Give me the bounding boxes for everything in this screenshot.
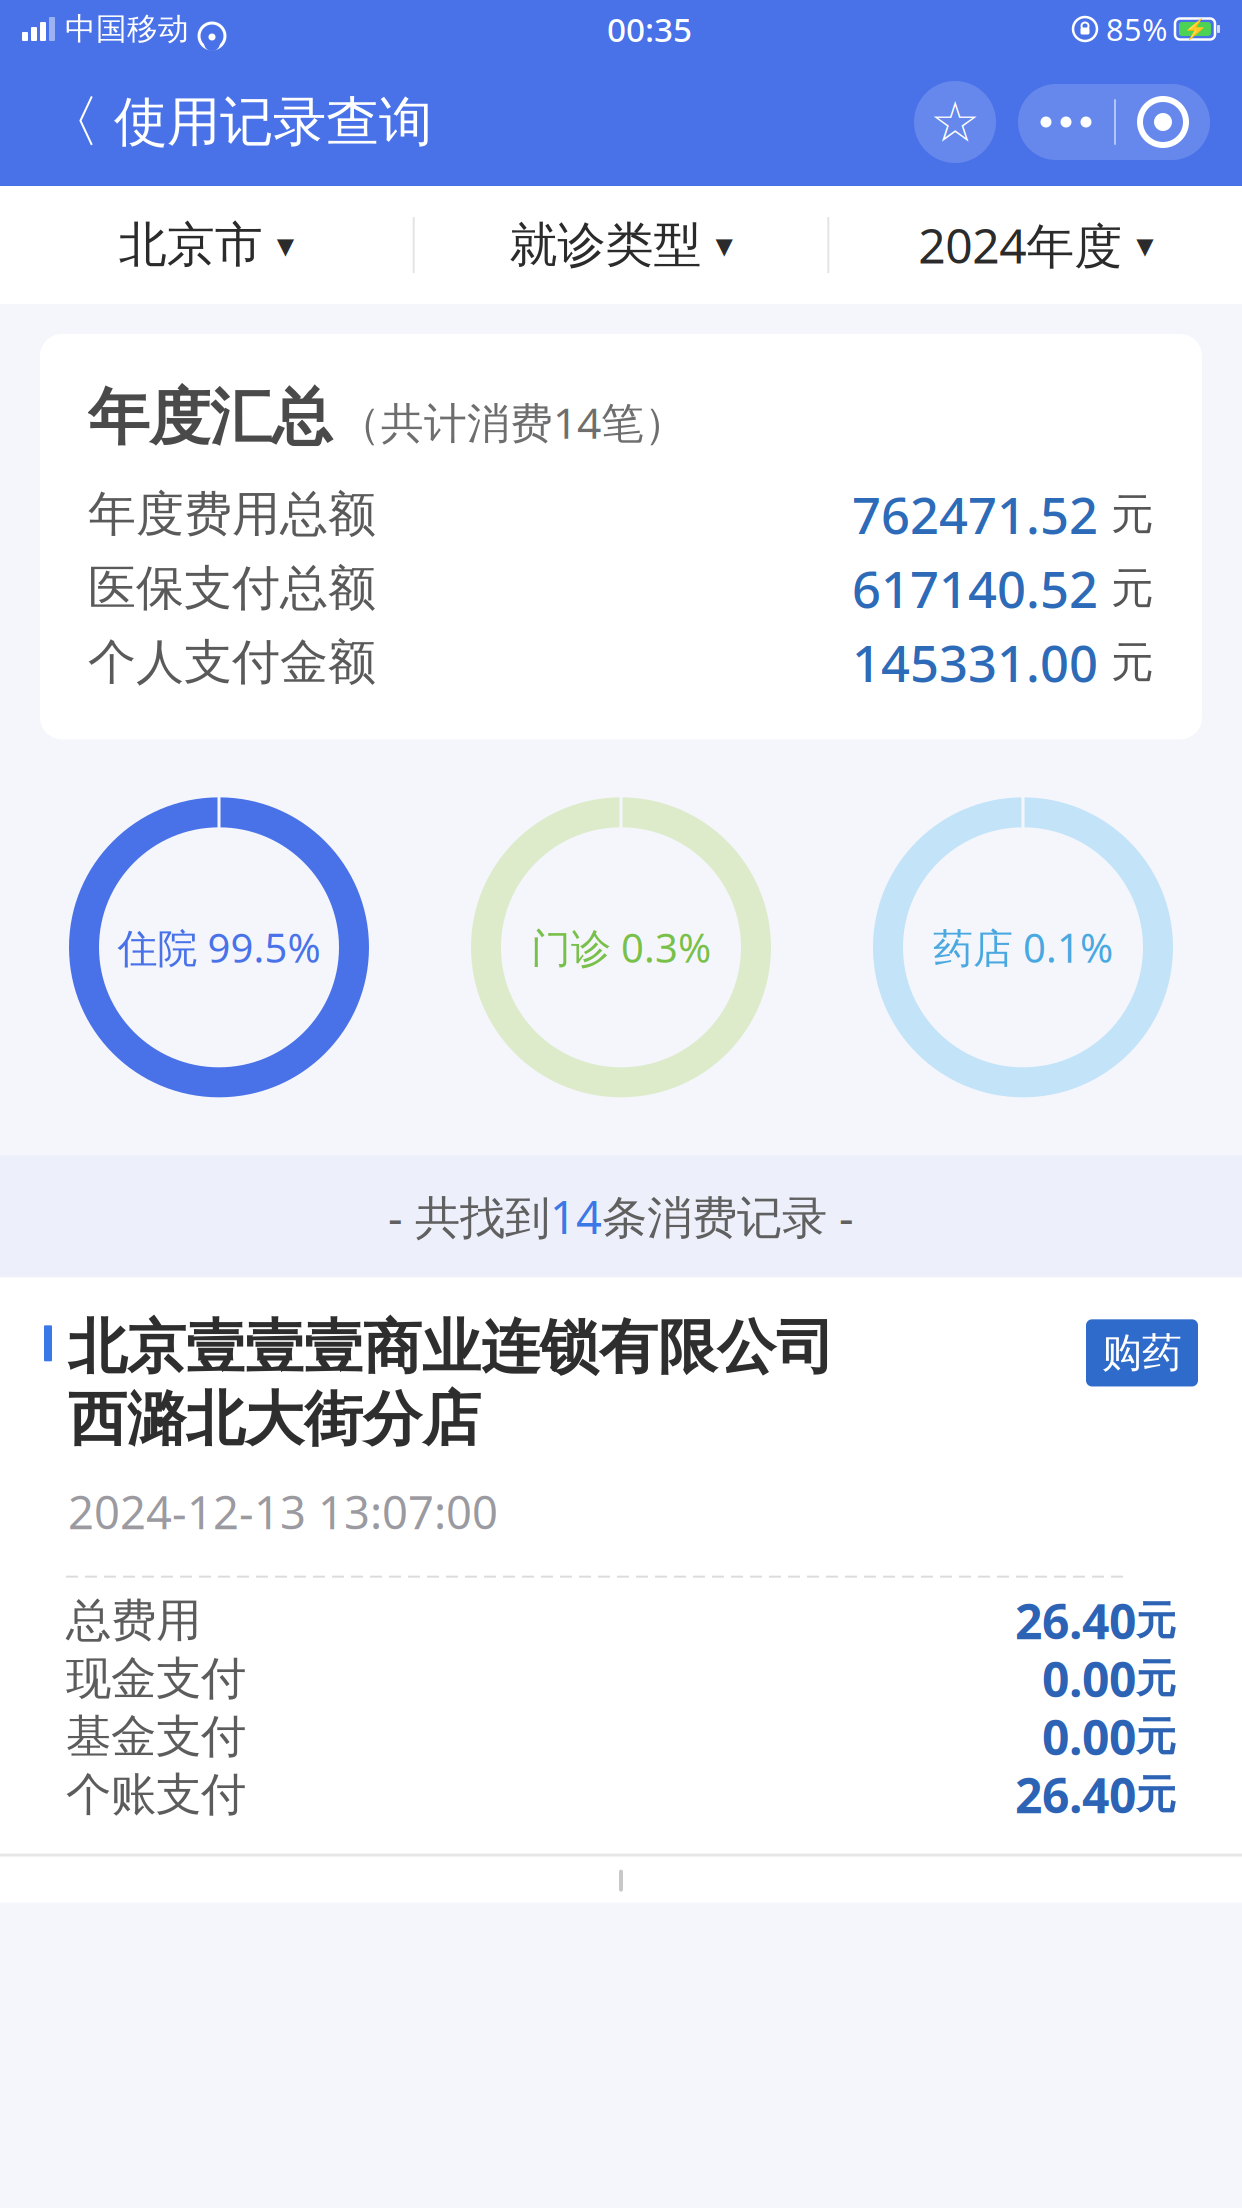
staticText: 总费用 [66,1593,201,1648]
staticText: 26.40 [1015,1763,1136,1826]
staticText: 617140.52 [852,555,1098,622]
staticText: 基金支付 [66,1709,246,1764]
staticText: （共计消费14笔） [338,394,687,450]
staticText: - 共找到 [388,1186,550,1246]
staticText: 年度费用总额 [88,485,376,544]
staticText: 145331.00 [852,629,1098,696]
staticText: 条消费记录 - [602,1186,854,1246]
staticText: ▾ [715,225,732,265]
staticText: 26.40 [1015,1589,1136,1652]
staticText: 住院 99.5% [117,921,320,974]
staticText: 元 [1098,488,1154,540]
staticText: 药店 0.1% [933,921,1113,974]
staticText: 0.00 [1042,1647,1136,1710]
staticText: 北京壹壹壹商业连锁有限公司西潞北大街分店 [68,1311,835,1455]
staticText: 14 [550,1186,602,1246]
staticText: 元 [1098,636,1154,688]
button[interactable]: 〈 [0,80,432,164]
staticText: 2024年度 [918,213,1122,277]
staticText: 元 [1136,1770,1176,1819]
staticText: 医保支付总额 [88,559,376,618]
staticText: 门诊 0.3% [531,921,711,974]
staticText: ☆ [930,90,980,154]
staticText: 现金支付 [66,1651,246,1706]
button[interactable]: 更多 [1018,84,1114,160]
staticText: 中国移动 [65,10,189,48]
staticText: 〈 [44,88,100,156]
button[interactable]: 北京市 [0,186,413,304]
staticText: ▾ [1136,225,1153,265]
staticText: 年度汇总 [88,380,332,455]
staticText: 元 [1098,562,1154,614]
button[interactable]: 收藏 [914,81,996,163]
button[interactable]: 就诊类型 [415,186,827,304]
staticText: 个人支付金额 [88,633,376,692]
staticText: 00:35 [607,7,692,51]
staticText: 购药 [1102,1328,1182,1377]
staticText: ▾ [277,225,294,265]
staticText: 元 [1136,1654,1176,1703]
staticText: 元 [1136,1596,1176,1645]
staticText: 85% [1106,9,1167,49]
staticText: 北京市 [119,215,263,274]
button[interactable]: 关闭 [1116,84,1210,160]
staticText: 个账支付 [66,1767,246,1822]
button[interactable]: 2024年度 [829,186,1242,304]
staticText: 0.00 [1042,1705,1136,1768]
staticText: ⚡ [1182,18,1207,40]
staticText: 2024-12-13 13:07:00 [68,1481,498,1542]
staticText: 762471.52 [852,481,1098,548]
staticText: 元 [1136,1712,1176,1761]
staticText: 就诊类型 [509,215,701,274]
button[interactable]: 北京壹壹壹商业连锁有限公司西潞北大街分店 [0,1277,1242,1854]
staticText: 使用记录查询 [114,89,432,155]
